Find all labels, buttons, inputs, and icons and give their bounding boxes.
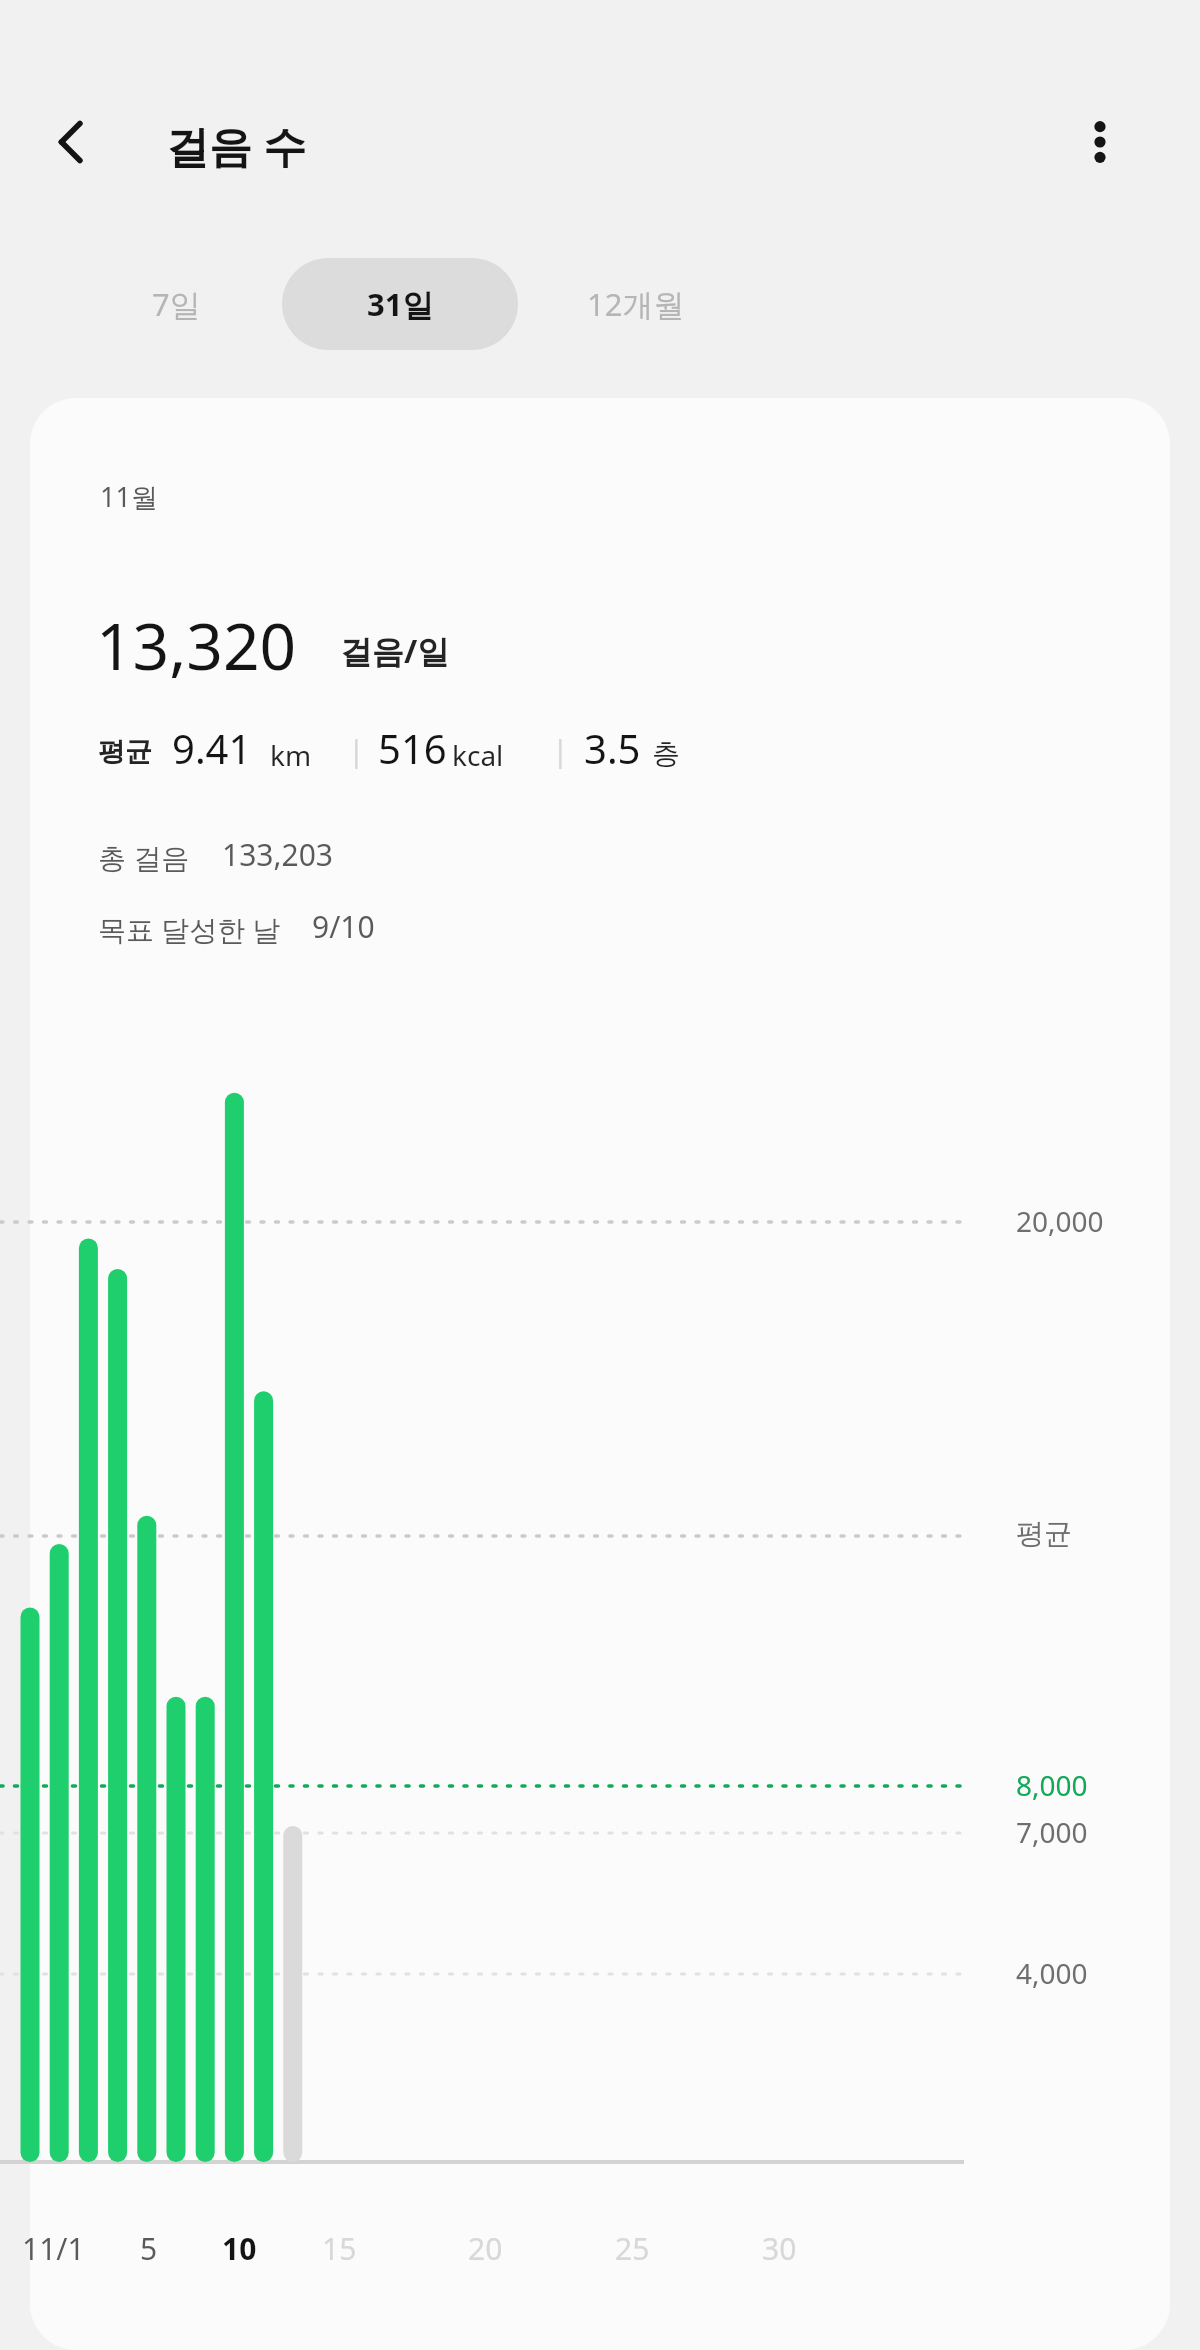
- staticText: 516: [378, 721, 447, 775]
- staticText: 평균: [1016, 1516, 1072, 1551]
- staticText: 걸음 수: [166, 116, 307, 175]
- staticText: 25: [615, 2228, 650, 2269]
- staticText: 5: [140, 2228, 158, 2269]
- staticText: 평균: [98, 735, 152, 769]
- staticText: 31일: [367, 283, 434, 325]
- staticText: 목표 달성한 날: [98, 910, 281, 948]
- staticText: 걸음/일: [340, 629, 450, 673]
- staticText: 9.41: [172, 721, 252, 775]
- staticText: kcal: [452, 736, 504, 774]
- staticText: 30: [762, 2228, 797, 2269]
- staticText: 15: [322, 2228, 357, 2269]
- button[interactable]: Back: [32, 102, 112, 182]
- staticText: 8,000: [1016, 1766, 1088, 1804]
- staticText: |: [552, 730, 569, 771]
- staticText: 133,203: [222, 834, 333, 875]
- staticText: 11월: [100, 478, 158, 515]
- staticText: 13,320: [96, 602, 297, 689]
- staticText: km: [270, 736, 312, 774]
- staticText: 층: [652, 736, 680, 771]
- staticText: 9/10: [312, 906, 375, 947]
- staticText: 7일: [152, 283, 201, 325]
- staticText: 3.5: [584, 721, 641, 775]
- staticText: 7,000: [1016, 1813, 1088, 1851]
- staticText: 총 걸음: [98, 838, 190, 876]
- staticText: 20: [468, 2228, 503, 2269]
- button[interactable]: More options: [1058, 100, 1142, 184]
- button[interactable]: 7일: [58, 258, 294, 350]
- staticText: 10: [222, 2228, 257, 2269]
- staticText: 4,000: [1016, 1954, 1088, 1992]
- staticText: |: [348, 730, 365, 771]
- staticText: 20,000: [1016, 1202, 1104, 1240]
- button[interactable]: 31일: [282, 258, 518, 350]
- staticText: 11/1: [22, 2228, 85, 2269]
- staticText: 12개월: [587, 283, 685, 325]
- button[interactable]: 12개월: [518, 258, 754, 350]
